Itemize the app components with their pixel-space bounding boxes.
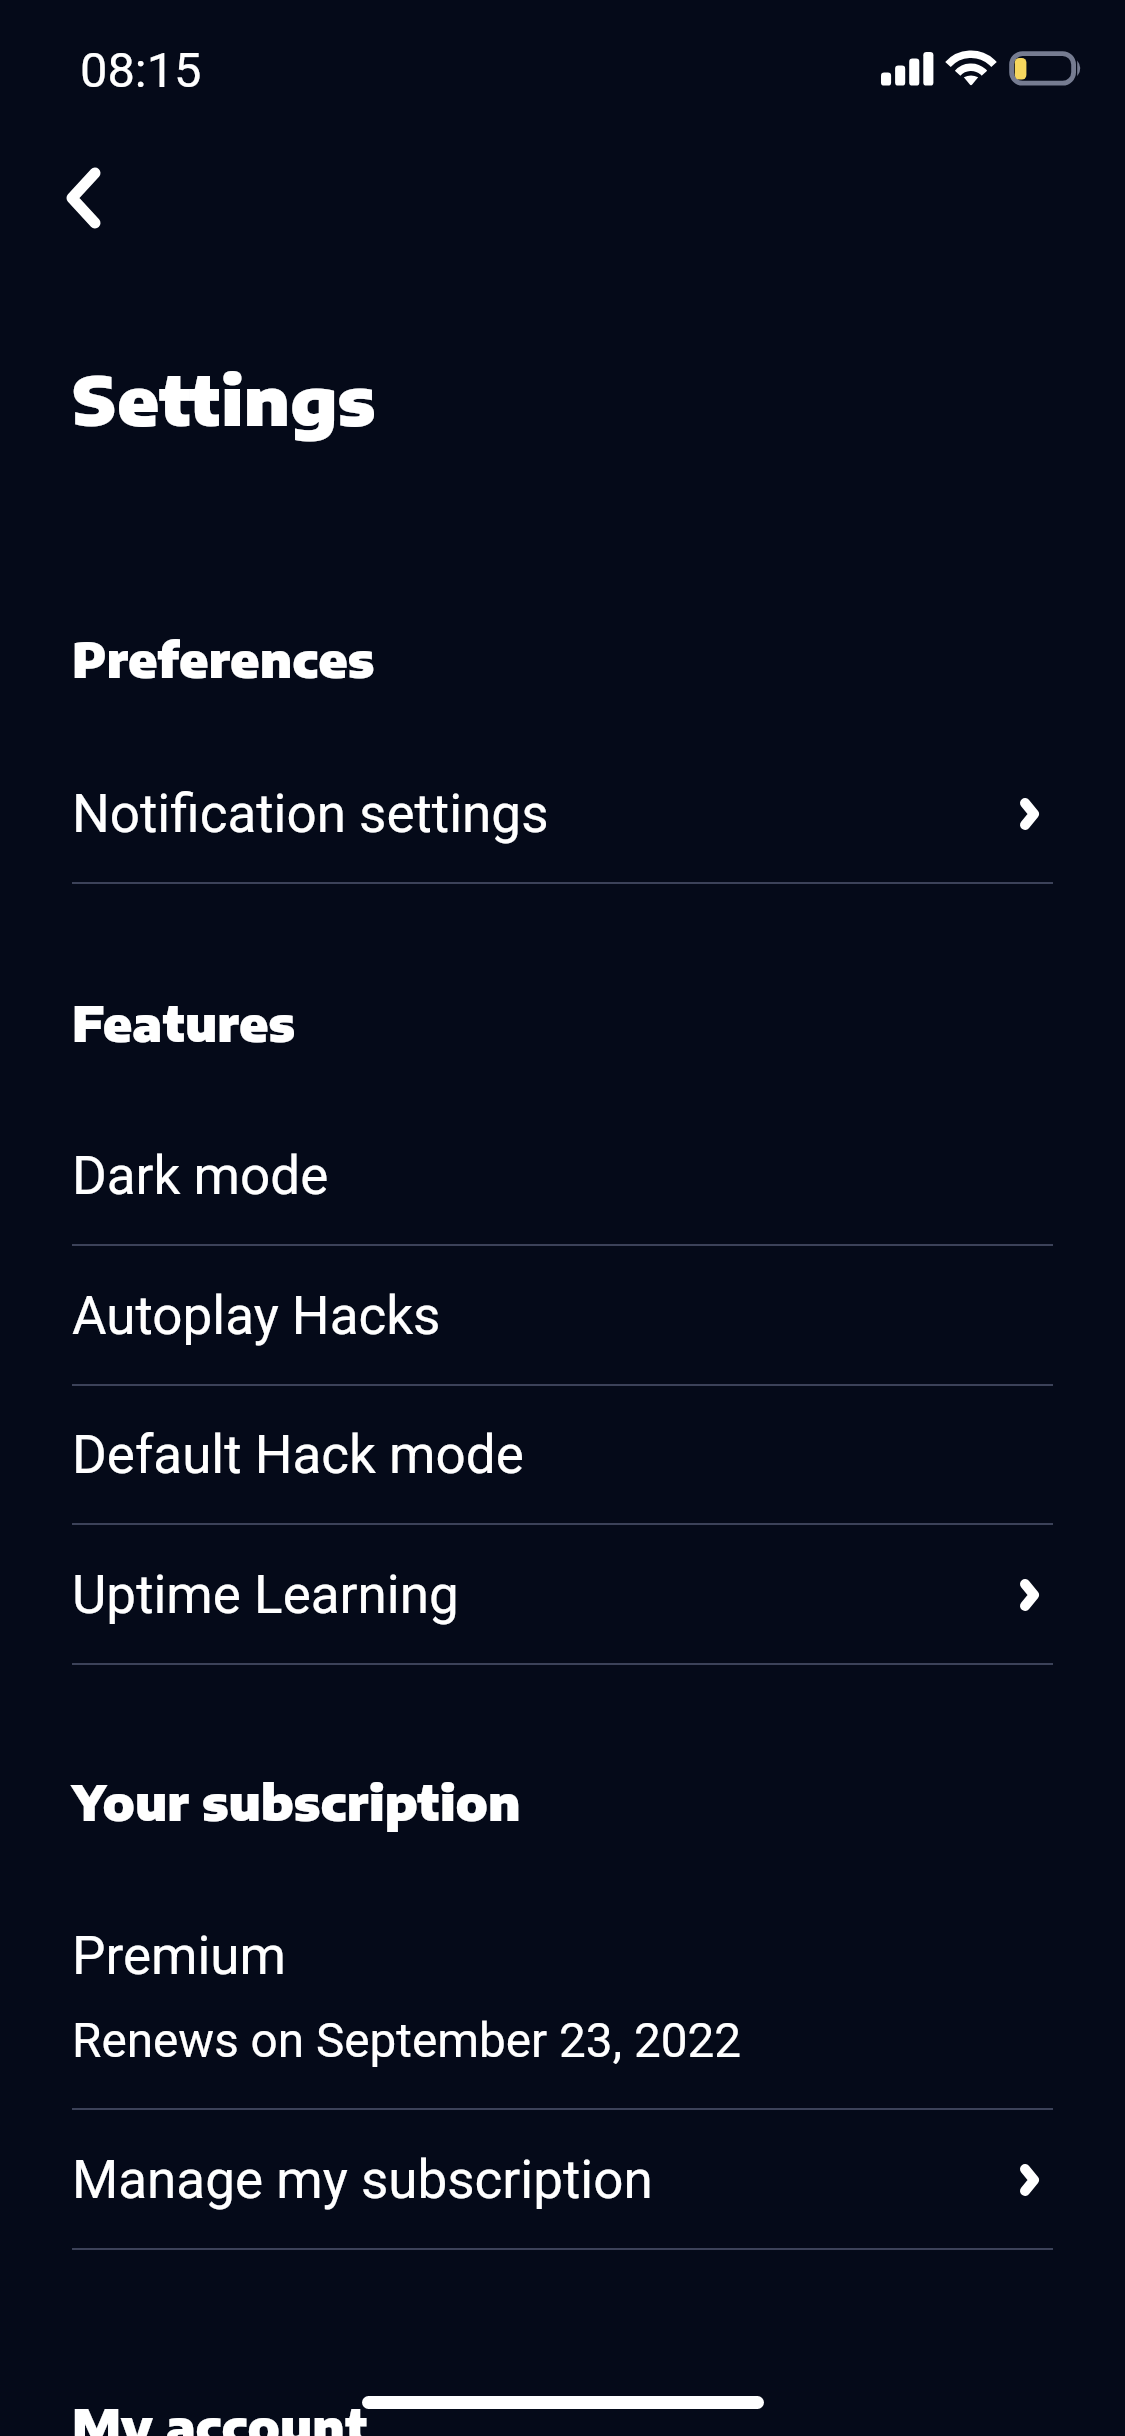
- staticText: Dark mode: [72, 1145, 329, 1207]
- staticText: Renews on September 23, 2022: [72, 2013, 742, 2069]
- staticText: Default Hack mode: [72, 1424, 524, 1486]
- staticText: Uptime Learning: [72, 1564, 459, 1626]
- button[interactable]: Default Hack mode: [0, 1385, 1125, 1525]
- staticText: Features: [72, 993, 296, 1052]
- staticText: Settings: [72, 356, 376, 441]
- staticText: My account: [72, 2396, 368, 2436]
- staticText: 08:15: [80, 42, 202, 99]
- staticText: Autoplay Hacks: [72, 1285, 441, 1347]
- staticText: Notification settings: [72, 783, 549, 845]
- staticText: Manage my subscription: [72, 2149, 653, 2211]
- button[interactable]: Dark mode: [0, 1106, 1125, 1246]
- button[interactable]: Back: [5, 120, 161, 276]
- button[interactable]: Notification settings: [0, 744, 1125, 884]
- staticText: Preferences: [72, 629, 375, 688]
- button[interactable]: Autoplay Hacks: [0, 1246, 1125, 1386]
- staticText: Premium: [72, 1925, 287, 1987]
- staticText: Your subscription: [72, 1772, 521, 1831]
- button[interactable]: Uptime Learning: [0, 1525, 1125, 1665]
- button[interactable]: Manage my subscription: [0, 2110, 1125, 2250]
